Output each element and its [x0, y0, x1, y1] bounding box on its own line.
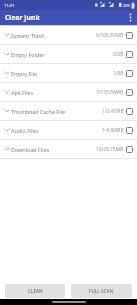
button[interactable]: Empty Folder [0, 45, 137, 64]
button[interactable] [126, 32, 133, 39]
button[interactable] [126, 13, 135, 22]
button[interactable] [126, 70, 133, 77]
button[interactable]: Empty File [0, 64, 137, 83]
staticText: Apk Files [11, 89, 34, 96]
button[interactable] [126, 89, 133, 96]
staticText: Empty Folder [11, 51, 45, 58]
staticText: 11:21 [4, 3, 15, 8]
staticText: CLEAN [28, 288, 43, 294]
staticText: FULL SCAN [89, 288, 114, 294]
staticText: 6/109.33MB [96, 32, 124, 39]
staticText: 1/0B [113, 70, 124, 77]
staticText: System Trash [11, 32, 45, 39]
button[interactable] [126, 108, 133, 115]
staticText: 3/155.66MB [96, 89, 124, 96]
staticText: 0/0B [113, 51, 124, 58]
staticText: 25% [123, 3, 130, 8]
button[interactable]: Download Files [0, 140, 137, 159]
button[interactable] [126, 146, 133, 153]
button[interactable] [126, 127, 133, 134]
button[interactable]: Apk Files [0, 83, 137, 102]
button[interactable]: CLEAN [5, 284, 65, 298]
staticText: 1/3.41MB [102, 108, 124, 115]
staticText: Empty File [11, 70, 38, 77]
staticText: Clear Junk [5, 13, 40, 22]
button[interactable]: Thumbnail Cache File [0, 102, 137, 121]
button[interactable] [126, 51, 133, 58]
staticText: 1/4.86MB [102, 127, 124, 134]
staticText: 10/28.75MB [96, 146, 124, 153]
staticText: Audio Files [11, 127, 39, 134]
staticText: Download Files [11, 146, 50, 153]
button[interactable]: System Trash [0, 26, 137, 45]
staticText: Thumbnail Cache File [11, 108, 65, 115]
button[interactable]: Audio Files [0, 121, 137, 140]
button[interactable]: FULL SCAN [71, 284, 132, 298]
